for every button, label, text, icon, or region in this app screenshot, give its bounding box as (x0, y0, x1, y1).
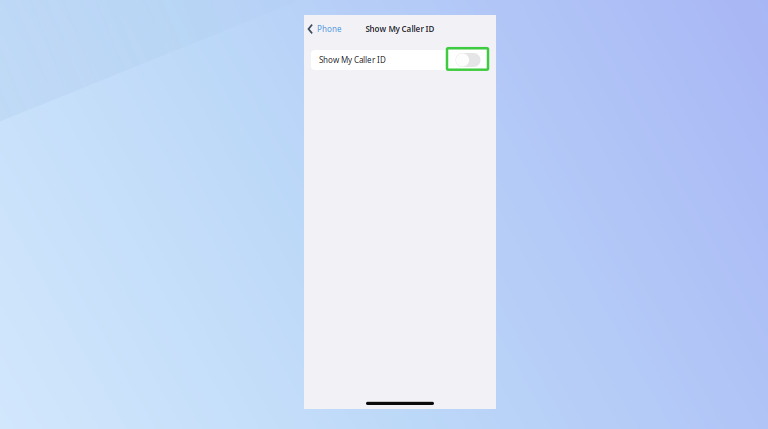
staticText: Show My Caller ID (365, 24, 434, 34)
staticText: Phone (317, 24, 342, 34)
staticText: Show My Caller ID (319, 55, 386, 65)
button[interactable]: Phone (304, 15, 348, 43)
button[interactable]: Show My Caller ID (455, 53, 480, 67)
